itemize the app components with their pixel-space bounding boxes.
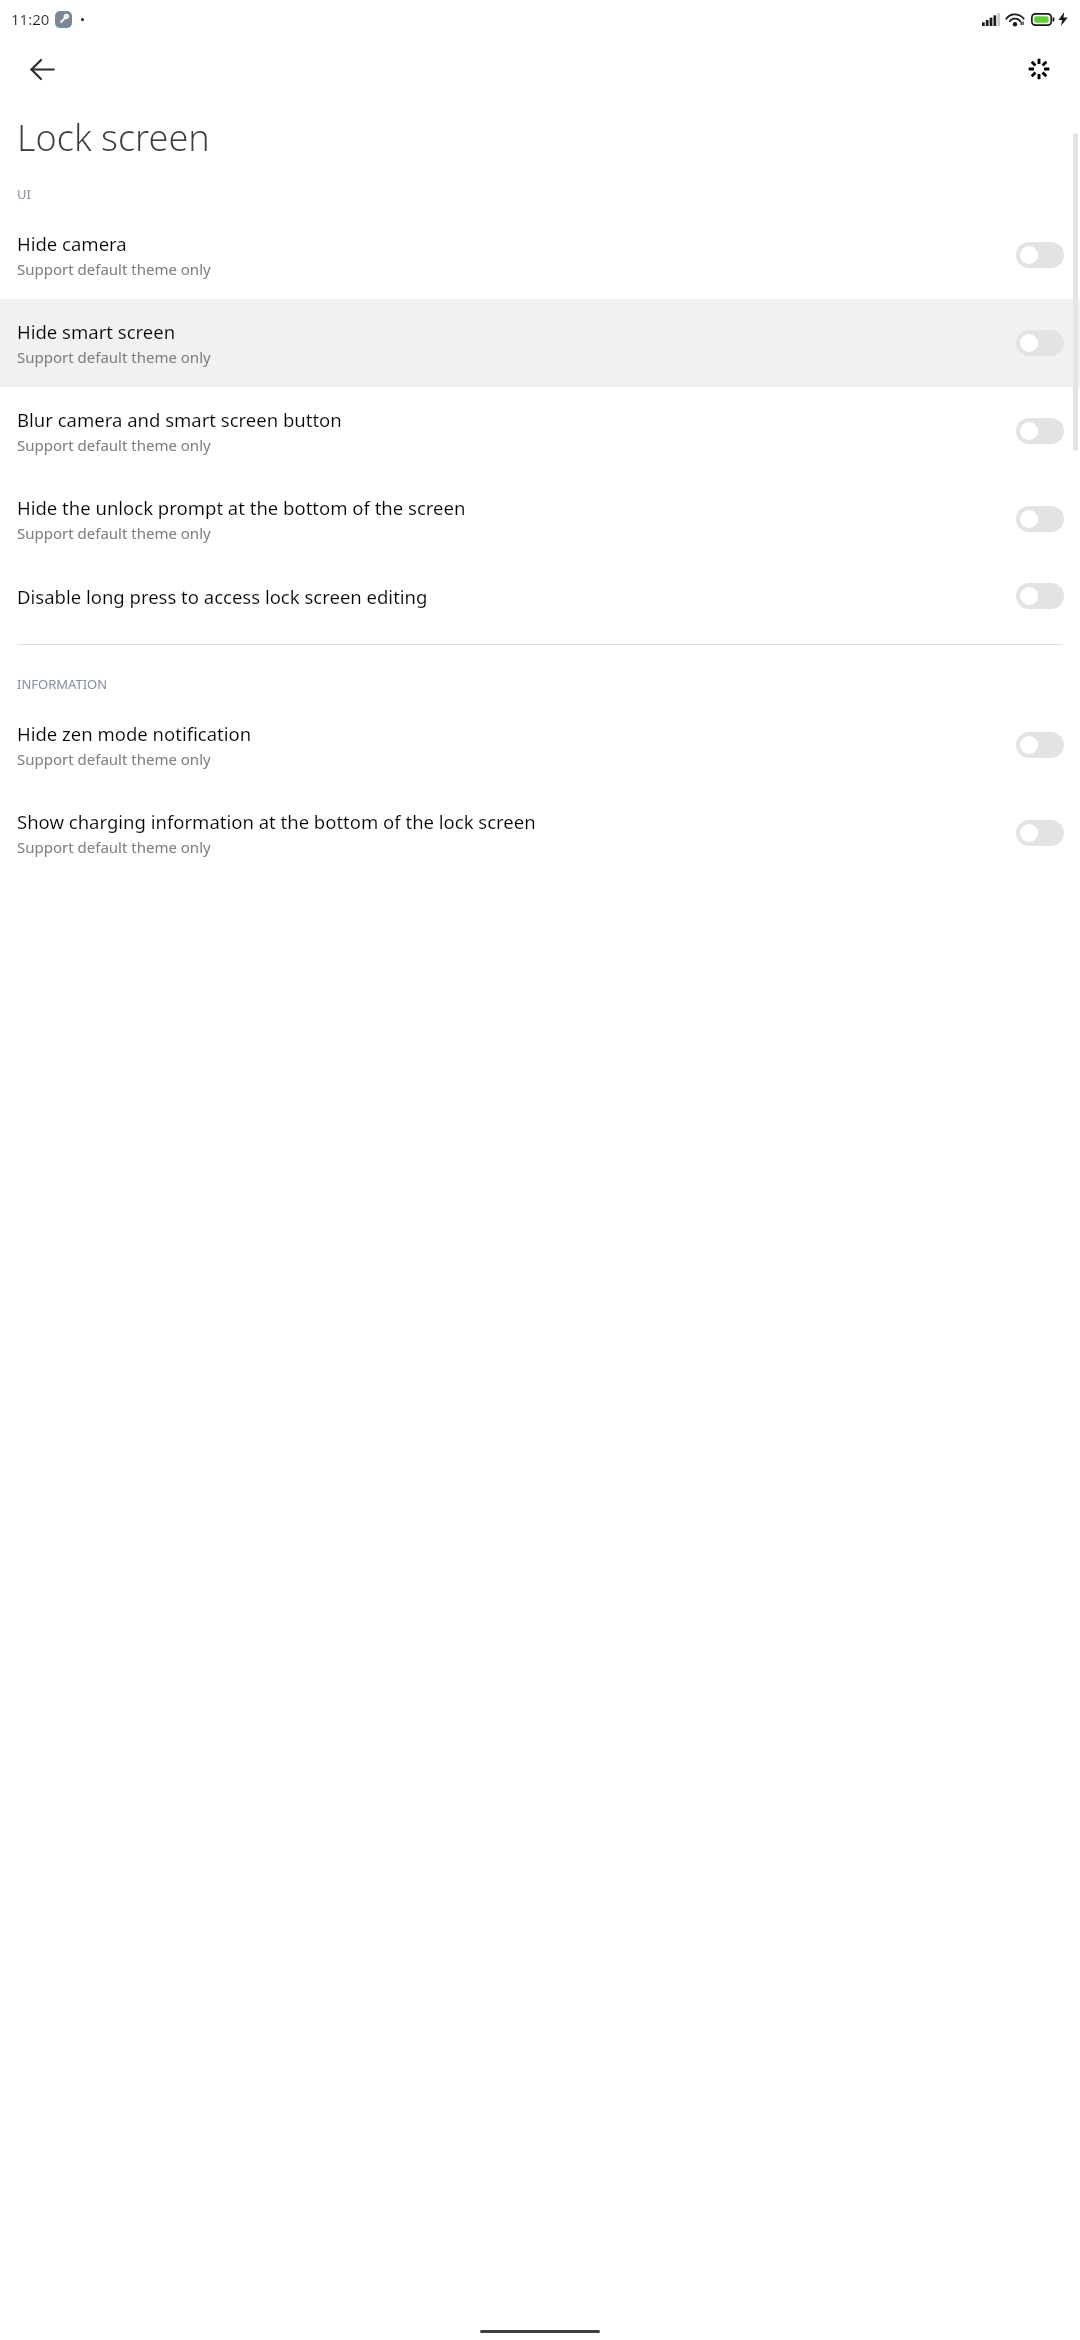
- staticText: Hide the unlock prompt at the bottom of …: [17, 495, 466, 520]
- button[interactable]: Hide zen mode notification: [0, 701, 1080, 789]
- staticText: 11:20: [11, 9, 50, 29]
- staticText: Hide smart screen: [17, 319, 176, 344]
- button[interactable]: Toggle: [1016, 583, 1064, 609]
- staticText: INFORMATION: [17, 675, 108, 693]
- button[interactable]: Hide smart screen: [0, 299, 1080, 387]
- button[interactable]: Toggle: [1016, 820, 1064, 846]
- staticText: Hide camera: [17, 231, 127, 256]
- staticText: Support default theme only: [17, 435, 211, 455]
- staticText: Blur camera and smart screen button: [17, 407, 342, 432]
- staticText: Support default theme only: [17, 837, 211, 857]
- button[interactable]: Hide the unlock prompt at the bottom of …: [0, 475, 1080, 563]
- button[interactable]: Blur camera and smart screen button: [0, 387, 1080, 475]
- button[interactable]: Loading: [1016, 46, 1062, 92]
- staticText: Support default theme only: [17, 523, 211, 543]
- staticText: UI: [17, 185, 31, 203]
- button[interactable]: Disable long press to access lock screen…: [0, 563, 1080, 629]
- button[interactable]: Toggle: [1016, 330, 1064, 356]
- staticText: Hide zen mode notification: [17, 721, 252, 746]
- button[interactable]: Toggle: [1016, 418, 1064, 444]
- staticText: Lock screen: [17, 113, 210, 162]
- button[interactable]: Hide camera: [0, 211, 1080, 299]
- staticText: Support default theme only: [17, 259, 211, 279]
- staticText: Support default theme only: [17, 347, 211, 367]
- staticText: Disable long press to access lock screen…: [17, 584, 428, 609]
- button[interactable]: Toggle: [1016, 506, 1064, 532]
- staticText: Support default theme only: [17, 749, 211, 769]
- button[interactable]: Toggle: [1016, 732, 1064, 758]
- button[interactable]: Show charging information at the bottom …: [0, 789, 1080, 877]
- button[interactable]: Toggle: [1016, 242, 1064, 268]
- button[interactable]: Back: [18, 45, 66, 93]
- staticText: Show charging information at the bottom …: [17, 809, 536, 834]
